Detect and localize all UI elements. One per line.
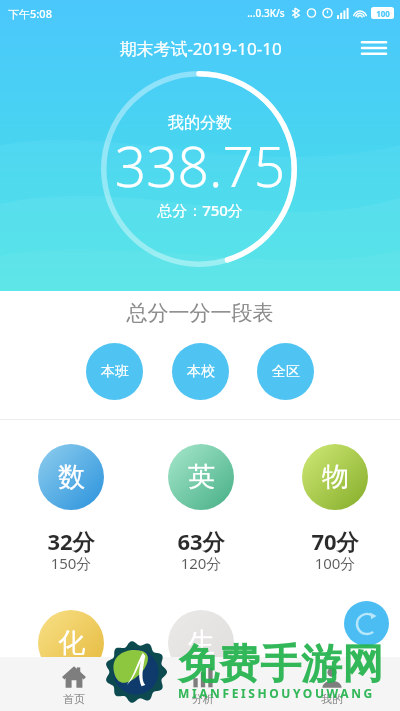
- staticText: 全区: [272, 363, 300, 381]
- staticText: 120分: [146, 553, 256, 573]
- staticText: 32分: [16, 526, 126, 556]
- button[interactable]: 物: [280, 444, 390, 510]
- staticText: 338.75: [102, 128, 298, 203]
- button[interactable]: 我的: [300, 657, 364, 711]
- button[interactable]: 分析: [171, 657, 235, 711]
- button[interactable]: Refresh: [344, 601, 389, 646]
- staticText: 本班: [101, 363, 129, 381]
- staticText: 分析: [192, 692, 214, 706]
- staticText: 63分: [146, 526, 256, 556]
- staticText: 100: [376, 8, 390, 19]
- staticText: 我的分数: [102, 113, 298, 133]
- staticText: 总分一分一段表: [0, 300, 400, 326]
- staticText: 期末考试-2019-10-10: [119, 37, 282, 60]
- staticText: MIANFEISHOUYOUWANG: [178, 685, 375, 701]
- staticText: 数: [58, 460, 85, 494]
- button[interactable]: 本校: [172, 343, 229, 400]
- button[interactable]: 英: [146, 444, 256, 510]
- button[interactable]: 化: [16, 610, 126, 676]
- button[interactable]: 全区: [257, 343, 314, 400]
- staticText: 生: [188, 626, 215, 660]
- staticText: 英: [188, 460, 215, 494]
- staticText: 下午5:08: [8, 6, 52, 21]
- staticText: 总分：750分: [102, 200, 298, 220]
- staticText: 本校: [187, 363, 215, 381]
- staticText: 物: [322, 460, 349, 494]
- button[interactable]: 首页: [42, 657, 106, 711]
- staticText: ...0.3K/s: [247, 6, 285, 20]
- staticText: 100分: [280, 553, 390, 573]
- staticText: 70分: [280, 526, 390, 556]
- button[interactable]: 本班: [86, 343, 143, 400]
- staticText: 免费手游网: [178, 639, 383, 691]
- staticText: 150分: [16, 553, 126, 573]
- staticText: 首页: [63, 692, 85, 706]
- staticText: 我的: [321, 692, 343, 706]
- button[interactable]: 生: [146, 610, 256, 676]
- button[interactable]: 数: [16, 444, 126, 510]
- staticText: 化: [58, 626, 85, 660]
- button[interactable]: Menu: [356, 30, 392, 66]
